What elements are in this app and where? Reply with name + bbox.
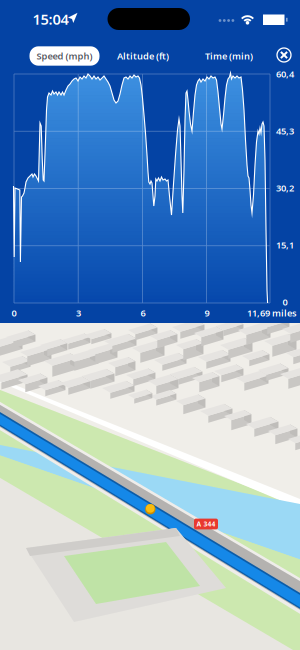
- staticText: 45,3: [276, 125, 294, 137]
- staticText: A 344: [196, 520, 215, 528]
- staticText: 11,69 miles: [247, 307, 297, 319]
- button[interactable]: Time (min): [198, 46, 260, 66]
- staticText: 30,2: [276, 182, 294, 194]
- staticText: Speed (mph): [36, 50, 92, 62]
- staticText: Time (min): [205, 50, 253, 62]
- staticText: 6: [140, 307, 145, 319]
- staticText: 15:04: [32, 9, 68, 29]
- staticText: 0: [11, 307, 16, 319]
- staticText: 9: [204, 307, 209, 319]
- staticText: 15,1: [276, 239, 294, 251]
- button[interactable]: Altitude (ft): [110, 46, 176, 66]
- button[interactable]: Speed (mph): [29, 46, 99, 66]
- staticText: 0: [282, 296, 287, 308]
- staticText: Altitude (ft): [117, 50, 169, 62]
- staticText: 3: [76, 307, 81, 319]
- staticText: 60,4: [276, 68, 294, 80]
- button[interactable]: Close chart: [272, 43, 296, 67]
